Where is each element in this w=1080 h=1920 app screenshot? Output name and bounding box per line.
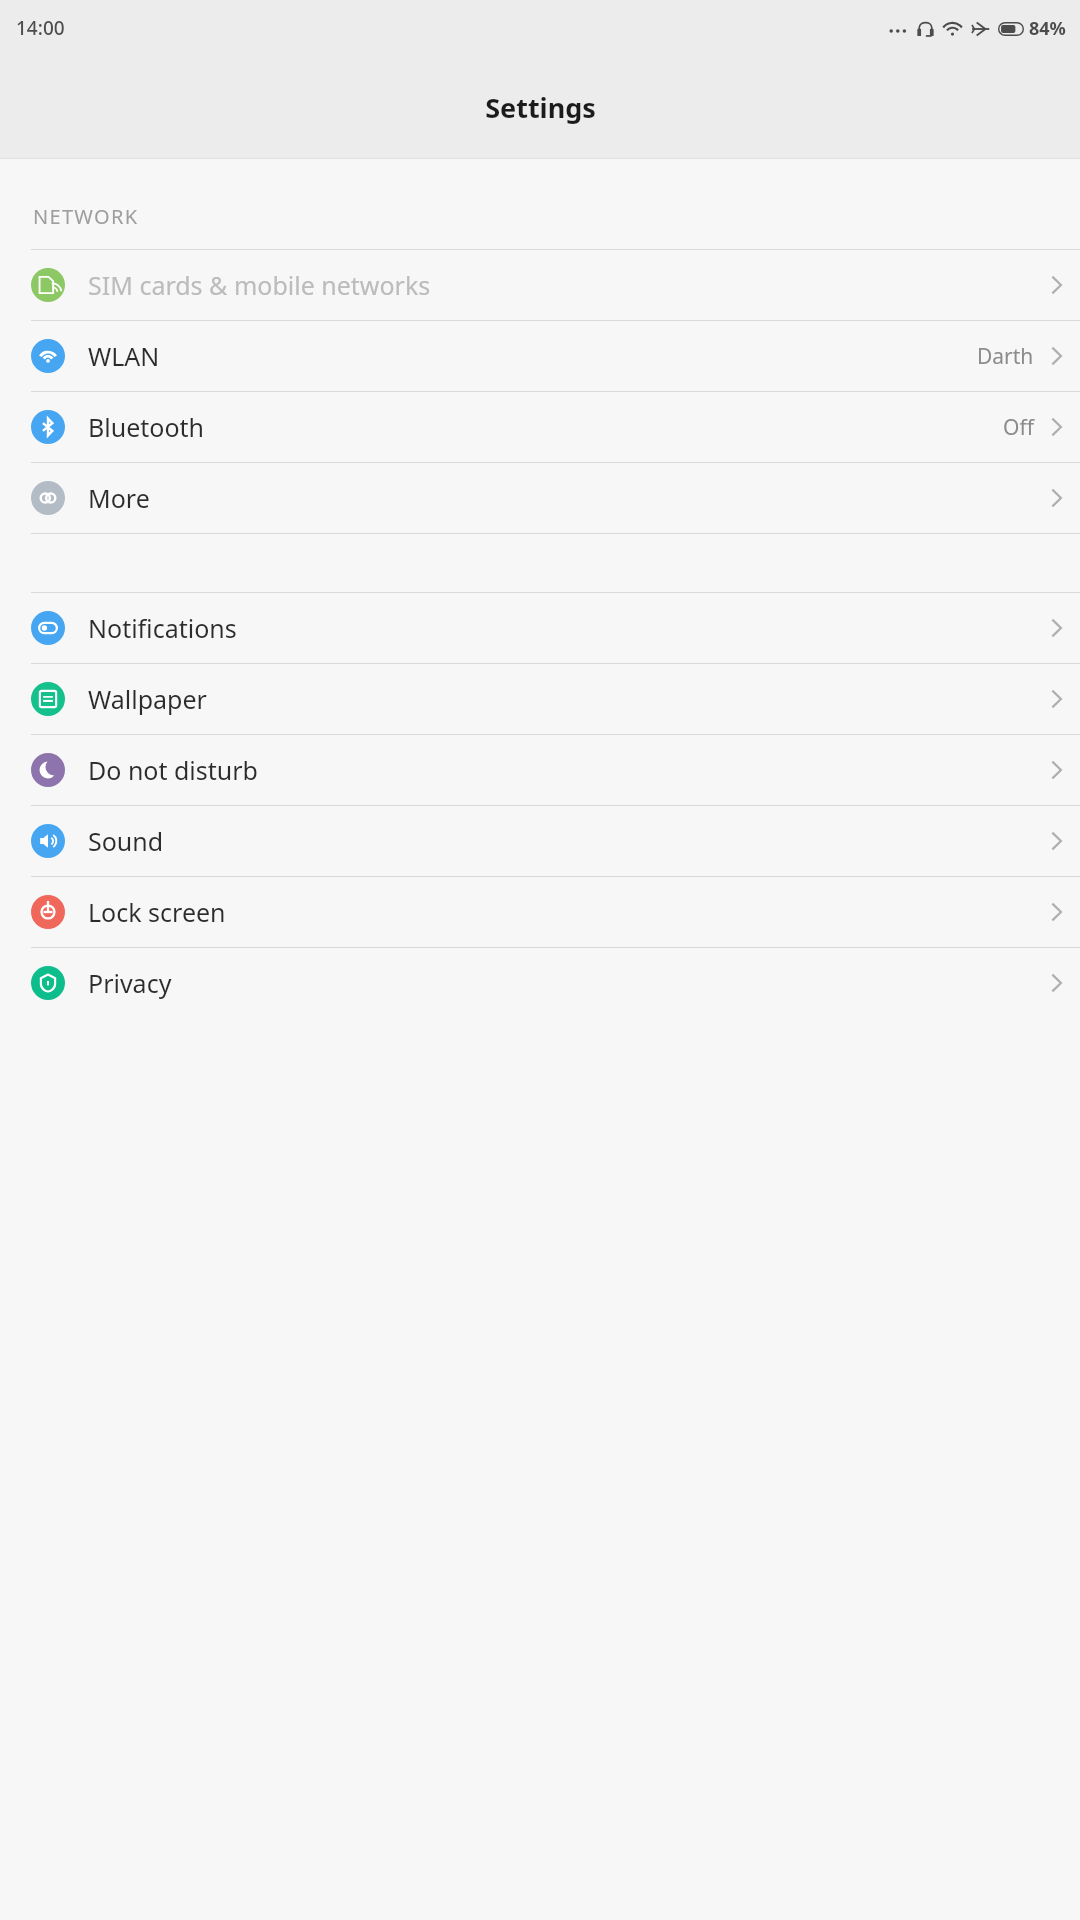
other: Bluetooth [31,410,65,444]
button[interactable]: Bluetooth [0,392,1080,462]
button[interactable]: More [0,463,1080,533]
staticText: Sound [88,824,164,858]
button[interactable]: Do not disturb [0,735,1080,805]
button[interactable]: Wallpaper [0,664,1080,734]
button[interactable]: SIM cards & mobile networks [0,250,1080,320]
staticText: Darth [977,342,1034,371]
other: More [31,481,65,515]
staticText: 84% [1029,16,1066,41]
other: SIM cards & mobile networks [31,268,65,302]
button[interactable]: Privacy [0,948,1080,1018]
staticText: Privacy [88,966,172,1000]
other: Lock screen [31,895,65,929]
staticText: Wallpaper [88,682,207,716]
staticText: More [88,481,150,515]
staticText: WLAN [88,339,160,373]
button[interactable]: Lock screen [0,877,1080,947]
staticText: SIM cards & mobile networks [88,268,431,302]
other: Privacy [31,966,65,1000]
staticText: Bluetooth [88,410,205,444]
staticText: Do not disturb [88,753,258,787]
button[interactable]: WLAN [0,321,1080,391]
staticText: Lock screen [88,895,226,929]
other: Wallpaper [31,682,65,716]
staticText: Settings [485,89,596,126]
other: WLAN [31,339,65,373]
other: Notifications [31,611,65,645]
button[interactable]: Notifications [0,593,1080,663]
staticText: Off [1003,413,1034,442]
staticText: 14:00 [16,15,65,41]
other: Do not disturb [31,753,65,787]
staticText: NETWORK [33,203,139,230]
other: Sound [31,824,65,858]
staticText: Notifications [88,611,237,645]
button[interactable]: Sound [0,806,1080,876]
